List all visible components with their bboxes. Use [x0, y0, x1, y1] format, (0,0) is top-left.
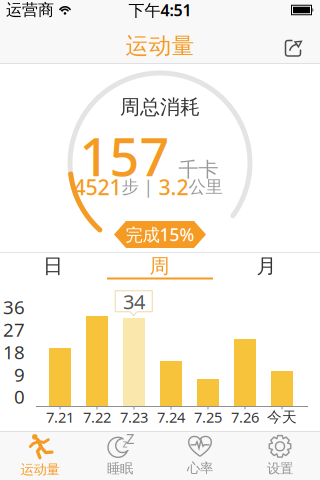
button[interactable]: 设置: [240, 431, 320, 480]
button[interactable]: 月: [213, 252, 320, 280]
staticText: 睡眠: [107, 460, 133, 477]
staticText: 34: [123, 288, 145, 315]
staticText: 7.25: [194, 407, 222, 427]
staticText: 日: [43, 254, 63, 278]
staticText: 7.23: [120, 407, 148, 427]
staticText: 36: [3, 295, 25, 319]
button[interactable]: 分享: [272, 25, 316, 69]
staticText: 心率: [187, 460, 213, 476]
staticText: 完成15%: [125, 223, 194, 246]
staticText: |: [143, 175, 153, 198]
staticText: 运动量: [20, 461, 59, 478]
staticText: 7.24: [157, 407, 185, 427]
staticText: 7.26: [231, 407, 259, 427]
button[interactable]: 运动量: [0, 431, 80, 480]
staticText: 周总消耗: [120, 95, 200, 119]
staticText: 3.2: [158, 173, 188, 201]
staticText: 下午4:51: [128, 0, 191, 21]
staticText: Z: [126, 429, 134, 448]
staticText: 9: [14, 362, 25, 387]
staticText: 设置: [267, 460, 293, 477]
staticText: 157: [79, 121, 169, 191]
staticText: 公里: [188, 176, 222, 198]
staticText: 周: [149, 254, 169, 278]
staticText: 27: [3, 317, 25, 342]
staticText: 步: [121, 176, 138, 198]
staticText: 千卡: [178, 157, 218, 182]
button[interactable]: 日: [0, 252, 106, 280]
staticText: 运营商: [6, 0, 54, 20]
staticText: 运动量: [125, 32, 194, 60]
button[interactable]: 心率: [160, 431, 240, 480]
staticText: 今天: [267, 408, 297, 426]
button[interactable]: 周: [106, 252, 213, 280]
staticText: z: [122, 436, 127, 450]
staticText: 0: [14, 384, 25, 409]
staticText: 7.22: [83, 407, 111, 427]
staticText: 4521: [73, 173, 121, 201]
staticText: 月: [256, 254, 276, 278]
staticText: 18: [3, 340, 25, 364]
staticText: 7.21: [46, 407, 74, 427]
button[interactable]: z: [80, 431, 160, 480]
